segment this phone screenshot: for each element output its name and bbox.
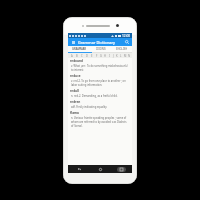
button[interactable]: reduce xyxy=(70,74,130,89)
staticText: A xyxy=(71,54,73,58)
staticText: v. red-2. To go from one place to anothe… xyxy=(71,79,126,83)
button[interactable]: Search xyxy=(124,39,130,45)
button[interactable]: Home xyxy=(90,165,111,173)
button[interactable]: M xyxy=(123,53,127,58)
staticText: B xyxy=(76,54,78,58)
button[interactable]: redren xyxy=(70,100,130,111)
staticText: M xyxy=(124,54,127,58)
staticText: H xyxy=(104,54,106,58)
staticText: reduce xyxy=(70,74,81,78)
staticText: N xyxy=(128,54,130,58)
staticText: redren xyxy=(70,100,81,104)
staticText: flama xyxy=(70,111,79,115)
button[interactable]: E xyxy=(89,53,94,58)
button[interactable]: redull xyxy=(70,89,130,100)
button[interactable]: GRAMMAR xyxy=(68,46,91,52)
staticText: F xyxy=(96,54,98,58)
staticText: E xyxy=(91,54,93,58)
staticText: J xyxy=(113,54,114,58)
staticText: n. Various frizette speaking peoples ; s… xyxy=(71,116,127,120)
staticText: whom are referred to by avoided s as Dia… xyxy=(71,120,127,124)
button[interactable]: L xyxy=(119,53,123,58)
button[interactable]: F xyxy=(94,53,99,58)
button[interactable]: Open navigation drawer xyxy=(70,39,76,45)
button[interactable]: K xyxy=(115,53,119,58)
staticText: GRAMMAR xyxy=(72,47,87,51)
button[interactable]: A xyxy=(69,53,74,58)
staticText: IDIOMS xyxy=(96,47,106,51)
staticText: I xyxy=(109,54,110,58)
button[interactable]: Back xyxy=(68,165,90,173)
staticText: to interest xyxy=(71,68,84,72)
button[interactable]: D xyxy=(84,53,89,58)
staticText: of Somal. xyxy=(71,124,83,128)
staticText: redull xyxy=(70,89,79,93)
button[interactable]: G xyxy=(99,53,103,58)
staticText: labor suiting information. xyxy=(71,83,103,87)
staticText: ENGLISH xyxy=(116,47,128,51)
button[interactable]: redound xyxy=(70,59,130,74)
button[interactable]: IDIOMS xyxy=(91,46,111,52)
staticText: adf. Firstly indicating equality. xyxy=(71,105,108,109)
staticText: 12:00 xyxy=(122,34,131,38)
staticText: L xyxy=(120,54,122,58)
staticText: K xyxy=(116,54,118,58)
button[interactable]: ENGLISH xyxy=(111,46,132,52)
button[interactable]: C xyxy=(79,53,84,58)
staticText: n. red-2. Demanding, as a fretful child. xyxy=(71,94,118,98)
button[interactable]: H xyxy=(103,53,107,58)
button[interactable]: I xyxy=(107,53,111,58)
staticText: redound xyxy=(70,59,84,63)
button[interactable]: J xyxy=(111,53,115,58)
button[interactable]: B xyxy=(74,53,79,58)
staticText: C xyxy=(81,54,83,58)
staticText: v. What ,we : To do something misbehavio… xyxy=(71,64,128,68)
button[interactable]: flama xyxy=(70,111,130,130)
button[interactable]: N xyxy=(127,53,131,58)
button[interactable]: Recent apps xyxy=(111,165,132,173)
staticText: Grammar Dictionary xyxy=(78,40,124,45)
staticText: D xyxy=(86,54,88,58)
staticText: G xyxy=(100,54,102,58)
